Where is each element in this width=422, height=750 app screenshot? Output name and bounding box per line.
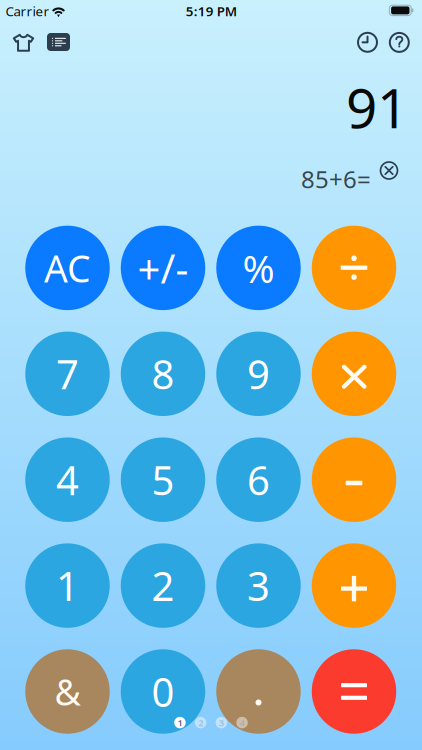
button[interactable]: 1: [25, 543, 110, 628]
button[interactable]: 3: [216, 543, 301, 628]
staticText: &: [54, 668, 80, 715]
staticText: 85+6=: [301, 163, 371, 195]
staticText: 1: [177, 716, 182, 729]
button[interactable]: Page 3: [216, 717, 227, 728]
staticText: 3: [247, 559, 270, 612]
button[interactable]: 5: [121, 437, 205, 522]
button[interactable]: 9: [216, 332, 301, 416]
staticText: 91: [346, 71, 408, 143]
button[interactable]: Subtract: [312, 437, 396, 522]
button[interactable]: Multiply: [312, 332, 396, 416]
staticText: 4: [239, 716, 244, 729]
button[interactable]: 4: [25, 437, 110, 522]
staticText: %: [242, 242, 274, 293]
button[interactable]: 6: [216, 437, 301, 522]
staticText: 6: [247, 453, 270, 506]
button[interactable]: Page 2: [195, 717, 206, 728]
button[interactable]: AC: [25, 226, 110, 310]
staticText: 2: [151, 559, 174, 612]
button[interactable]: Themes: [6, 25, 40, 59]
staticText: +/-: [137, 241, 188, 294]
button[interactable]: Recent: [350, 25, 384, 59]
button[interactable]: 8: [121, 332, 205, 416]
button[interactable]: History list: [41, 25, 75, 59]
staticText: 0: [151, 665, 174, 718]
button[interactable]: Equals: [312, 649, 396, 734]
button[interactable]: %: [216, 226, 301, 310]
button[interactable]: Add: [312, 543, 396, 628]
button[interactable]: 0: [121, 649, 205, 734]
button[interactable]: Page 4: [236, 717, 248, 728]
button[interactable]: Clear: [375, 156, 403, 184]
button[interactable]: 2: [121, 543, 205, 628]
button[interactable]: Help: [382, 25, 416, 59]
button[interactable]: 7: [25, 332, 110, 416]
button[interactable]: &: [25, 649, 110, 734]
button[interactable]: Decimal point: [216, 649, 301, 734]
button[interactable]: Page 1: [174, 717, 186, 728]
staticText: 1: [56, 559, 79, 612]
staticText: 8: [151, 347, 174, 400]
staticText: 9: [247, 347, 270, 400]
staticText: 4: [56, 453, 79, 506]
staticText: 7: [56, 347, 79, 400]
button[interactable]: +/-: [121, 226, 205, 310]
staticText: AC: [44, 243, 91, 293]
staticText: 5: [151, 453, 174, 506]
staticText: 2: [198, 716, 203, 729]
staticText: Carrier: [5, 2, 49, 20]
button[interactable]: Divide: [312, 226, 396, 310]
staticText: 3: [219, 716, 224, 729]
staticText: 5:19 PM: [186, 2, 237, 20]
